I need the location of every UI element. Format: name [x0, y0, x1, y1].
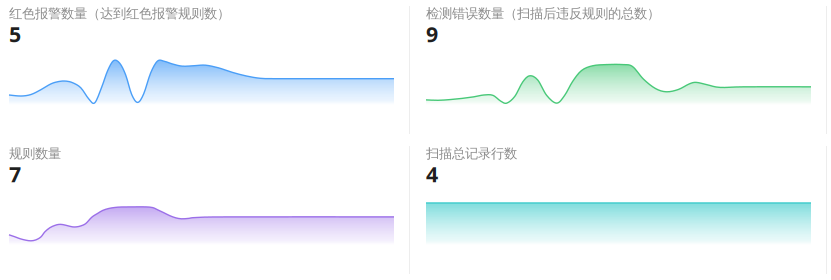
staticText: 规则数量 [9, 145, 61, 162]
staticText: 4 [426, 160, 438, 188]
staticText: 5 [9, 20, 21, 48]
staticText: 检测错误数量（扫描后违反规则的总数） [426, 5, 660, 22]
staticText: 红色报警数量（达到红色报警规则数） [9, 5, 230, 22]
staticText: 9 [426, 20, 438, 48]
staticText: 7 [9, 160, 21, 188]
staticText: 扫描总记录行数 [426, 145, 517, 162]
